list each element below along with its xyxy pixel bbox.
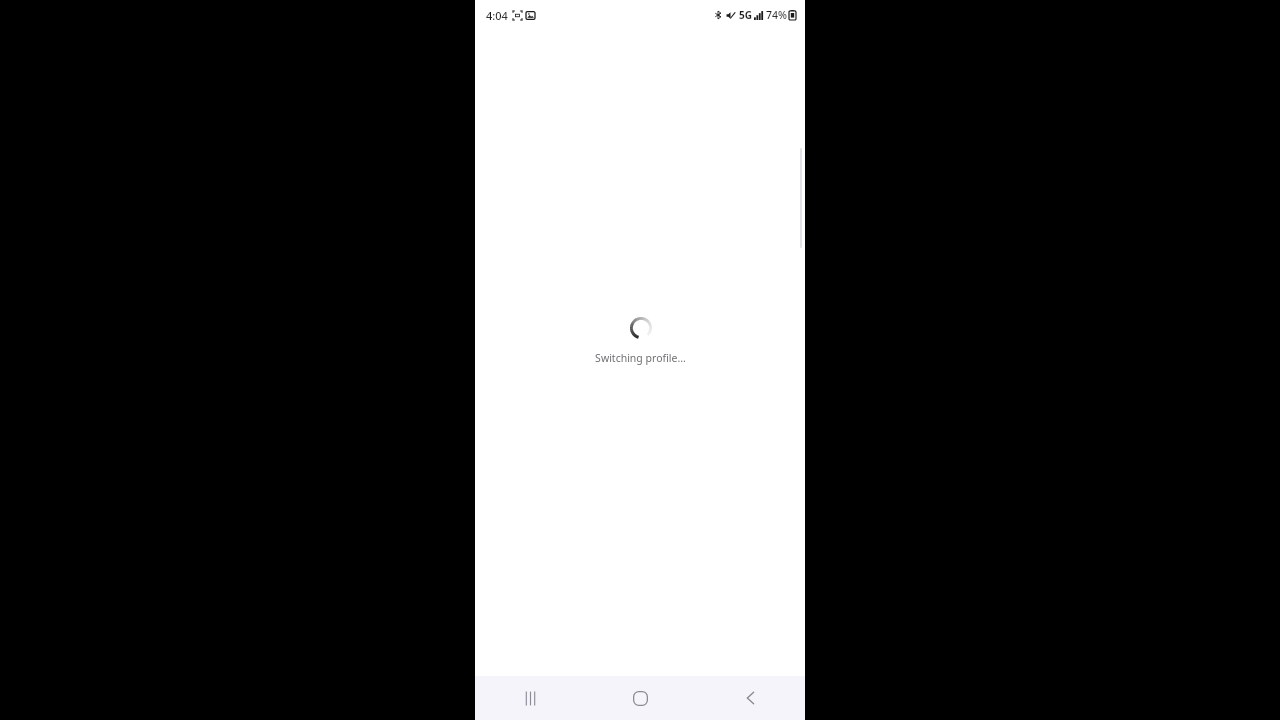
staticText: 5G (739, 8, 752, 22)
button[interactable]: Recents (475, 676, 585, 720)
staticText: Switching profile... (595, 351, 686, 365)
button[interactable]: Home (585, 676, 695, 720)
button[interactable]: Back (695, 676, 805, 720)
staticText: 4:04 (486, 8, 508, 23)
staticText: 74% (766, 8, 787, 22)
